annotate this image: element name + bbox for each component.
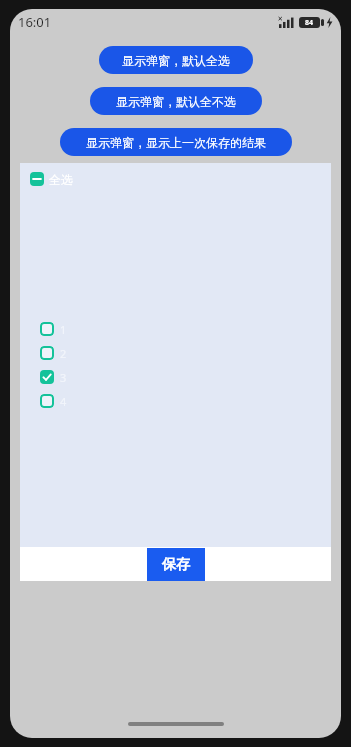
button[interactable]: 保存 <box>147 548 205 581</box>
button[interactable]: 1 <box>20 317 331 341</box>
staticText: 4 <box>60 394 67 409</box>
other: Home gesture bar <box>128 722 224 726</box>
staticText: 1 <box>60 322 67 337</box>
button[interactable]: 显示弹窗，默认全选 <box>99 46 253 74</box>
staticText: 保存 <box>162 556 190 574</box>
staticText: 2 <box>60 346 67 361</box>
button[interactable]: 显示弹窗，默认全不选 <box>90 87 262 115</box>
staticText: 显示弹窗，默认全不选 <box>116 94 236 109</box>
button[interactable]: 全选 <box>20 169 331 189</box>
button[interactable]: 显示弹窗，显示上一次保存的结果 <box>60 128 292 156</box>
button[interactable]: 3 <box>20 365 331 389</box>
staticText: 全选 <box>49 172 73 187</box>
staticText: 16:01 <box>18 13 52 31</box>
staticText: 显示弹窗，显示上一次保存的结果 <box>86 135 266 150</box>
button[interactable]: 2 <box>20 341 331 365</box>
staticText: 3 <box>60 370 67 385</box>
staticText: 84 <box>305 18 314 28</box>
staticText: 显示弹窗，默认全选 <box>122 53 230 68</box>
button[interactable]: 4 <box>20 389 331 413</box>
